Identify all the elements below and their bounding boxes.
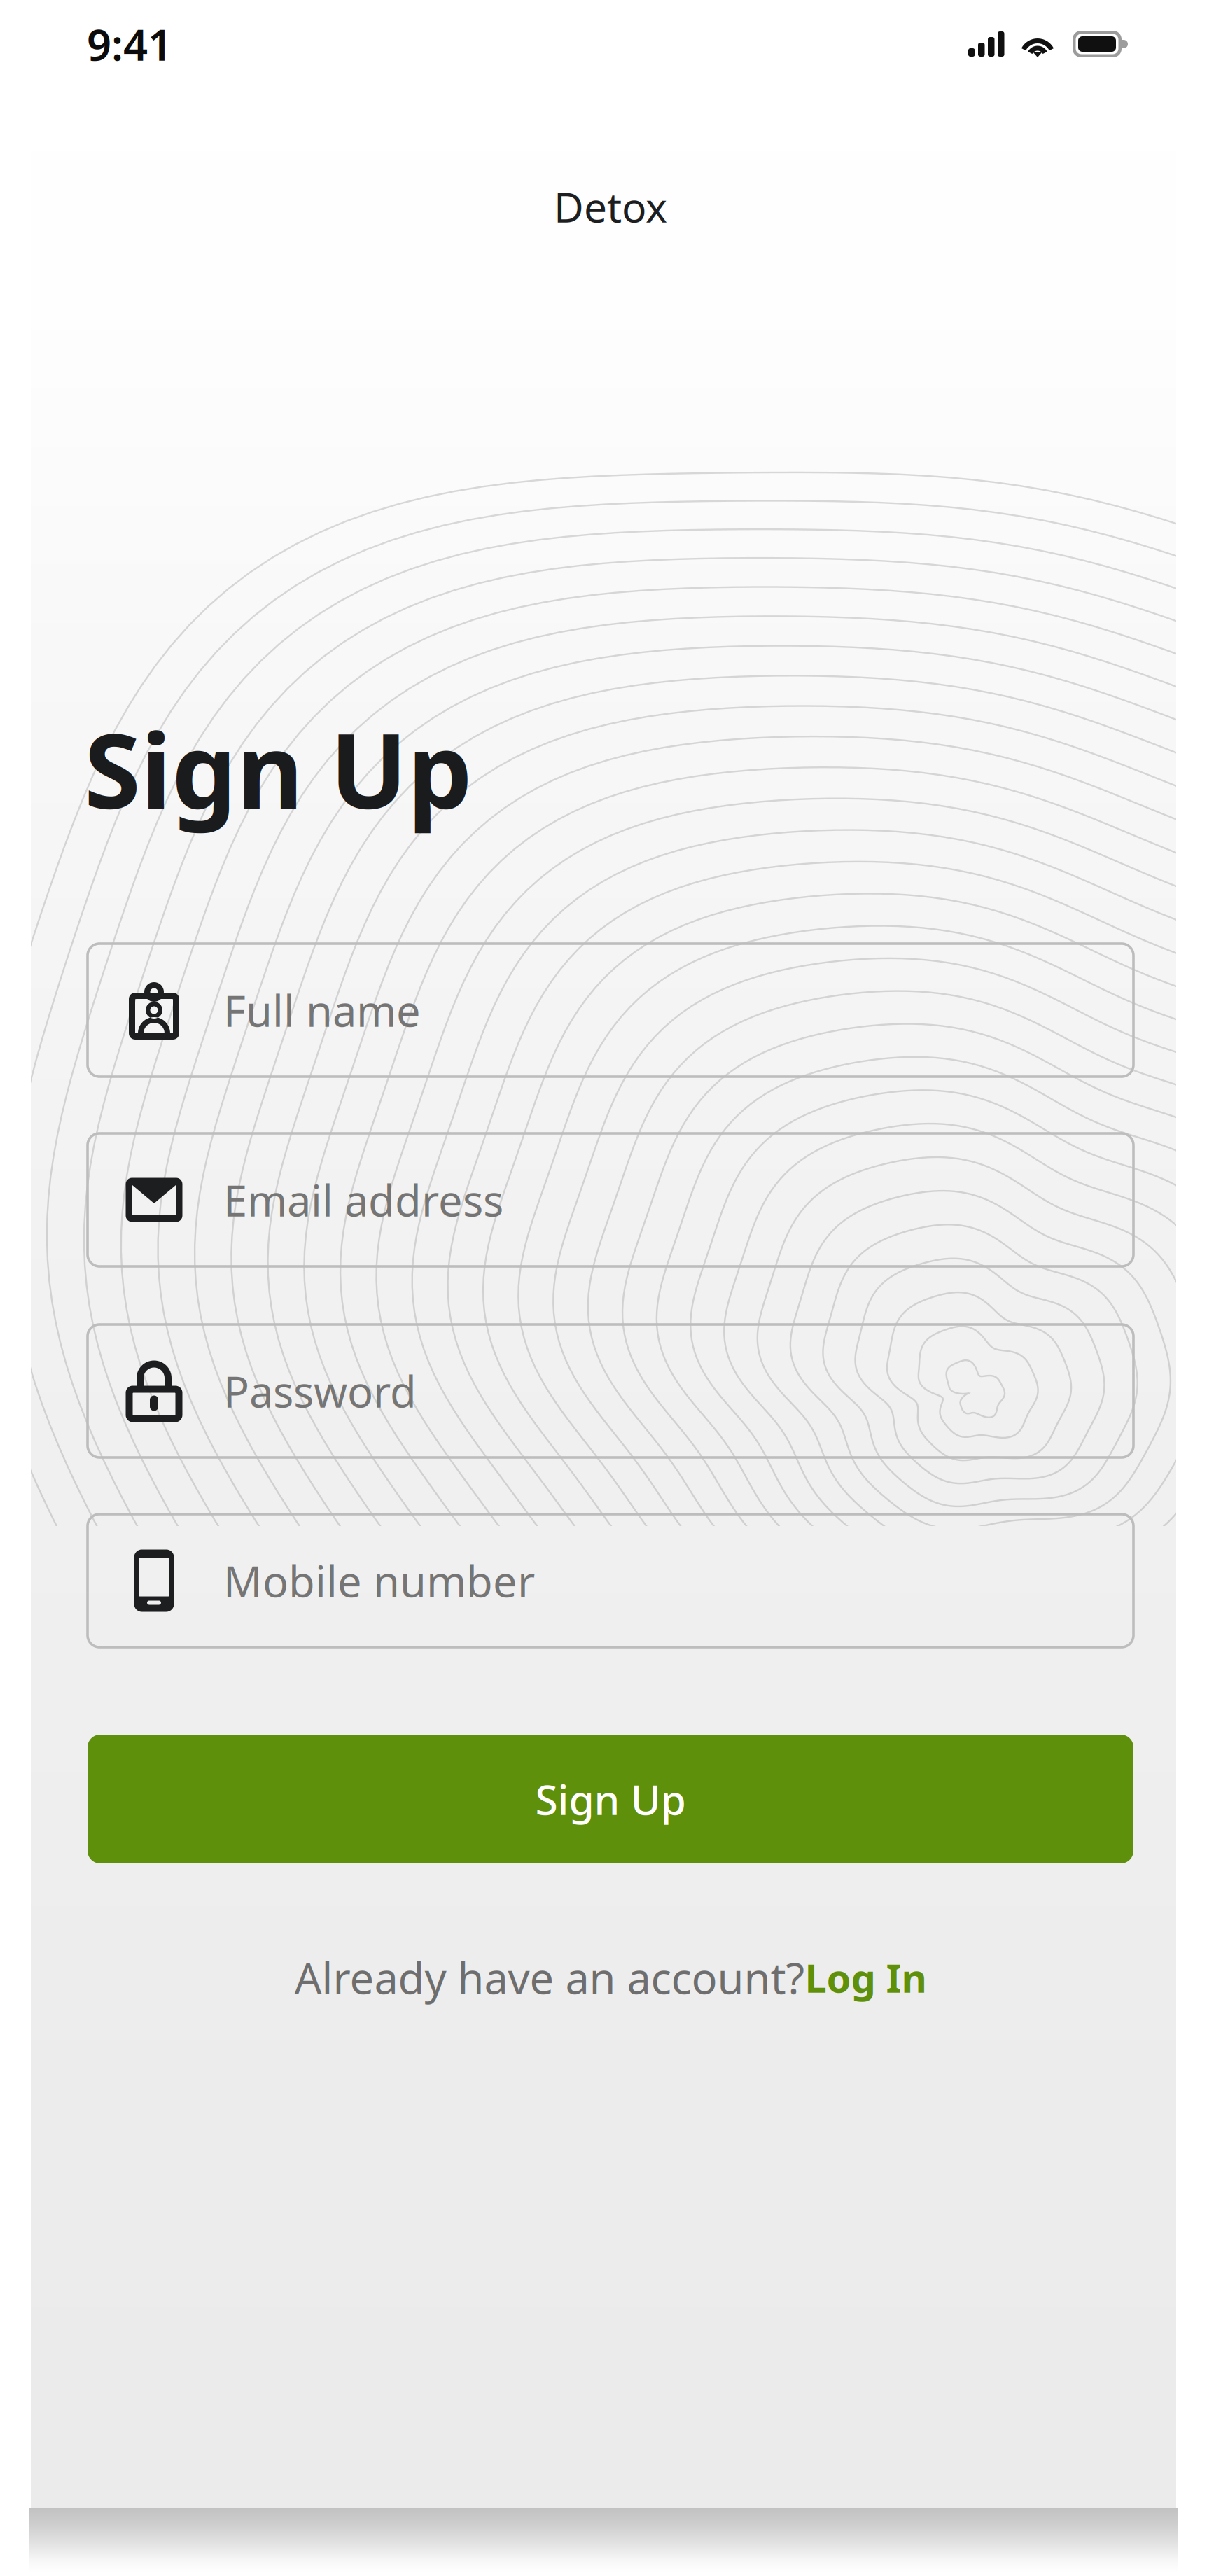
button[interactable]: Already have an account? — [88, 1946, 1133, 2009]
staticText: Detox — [554, 179, 667, 234]
staticText: Email address — [223, 1171, 503, 1228]
staticText: Log In — [805, 1951, 927, 2004]
button[interactable]: Password — [88, 1324, 1133, 1457]
button[interactable]: Mobile number — [88, 1514, 1133, 1647]
staticText: Mobile number — [223, 1552, 535, 1609]
staticText: Already have an account? — [294, 1949, 805, 2006]
button[interactable]: Full name — [88, 944, 1133, 1077]
button[interactable]: Email address — [88, 1133, 1133, 1266]
staticText: Sign Up — [535, 1772, 686, 1826]
staticText: Full name — [223, 982, 421, 1039]
staticText: Sign Up — [84, 701, 473, 837]
button[interactable]: Sign Up — [88, 1735, 1133, 1863]
staticText: 9:41 — [87, 16, 172, 73]
staticText: Password — [223, 1362, 417, 1419]
